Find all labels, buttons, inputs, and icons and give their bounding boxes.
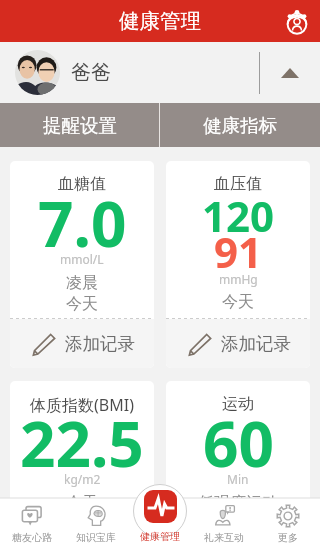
staticText: 今天: [66, 493, 98, 513]
staticText: 礼来互动: [204, 531, 244, 544]
staticText: kg/m2: [64, 471, 101, 487]
button[interactable]: 运动: [166, 381, 310, 548]
button[interactable]: 血压值: [166, 161, 310, 368]
staticText: 健康管理: [119, 8, 201, 34]
staticText: 血压值: [214, 174, 262, 194]
button[interactable]: 添加记录: [10, 319, 154, 368]
staticText: 60: [203, 401, 274, 485]
button[interactable]: 提醒设置: [0, 103, 159, 147]
button[interactable]: 更多: [256, 498, 320, 548]
button[interactable]: 糖友心路: [0, 498, 64, 548]
staticText: 健康指标: [203, 114, 277, 137]
button[interactable]: 添加记录: [166, 319, 310, 368]
staticText: mmHg: [219, 271, 258, 287]
staticText: Min: [227, 471, 249, 487]
staticText: 凌晨: [66, 273, 98, 293]
staticText: 今天: [66, 294, 98, 314]
button[interactable]: Account: [280, 4, 314, 38]
staticText: 健康管理: [140, 530, 180, 543]
staticText: 添加记录: [65, 333, 135, 355]
button[interactable]: 礼来互动: [192, 498, 256, 548]
staticText: 91: [214, 223, 263, 280]
staticText: 添加记录: [65, 513, 135, 535]
staticText: mmol/L: [60, 251, 104, 267]
button[interactable]: 血糖值: [10, 161, 154, 368]
staticText: 120: [202, 187, 275, 244]
staticText: 7.0: [38, 181, 127, 265]
staticText: 提醒设置: [43, 114, 117, 137]
staticText: 体质指数(BMI): [30, 394, 134, 416]
staticText: 血糖值: [58, 174, 106, 194]
button[interactable]: 添加记录: [166, 499, 310, 548]
button[interactable]: 知识宝库: [64, 498, 128, 548]
staticText: 更多: [278, 531, 298, 544]
staticText: 知识宝库: [76, 531, 116, 544]
staticText: 今天: [222, 292, 254, 312]
button[interactable]: 添加记录: [10, 499, 154, 548]
button[interactable]: [144, 490, 177, 523]
button[interactable]: 健康指标: [160, 103, 320, 147]
staticText: 低强度运动: [198, 493, 278, 513]
staticText: 添加记录: [221, 333, 291, 355]
button[interactable]: Collapse: [260, 42, 320, 103]
staticText: 22.5: [20, 401, 144, 485]
staticText: 运动: [222, 394, 254, 414]
staticText: 爸爸: [71, 60, 111, 85]
staticText: 添加记录: [221, 513, 291, 535]
button[interactable]: 体质指数(BMI): [10, 381, 154, 548]
staticText: 糖友心路: [12, 531, 52, 544]
